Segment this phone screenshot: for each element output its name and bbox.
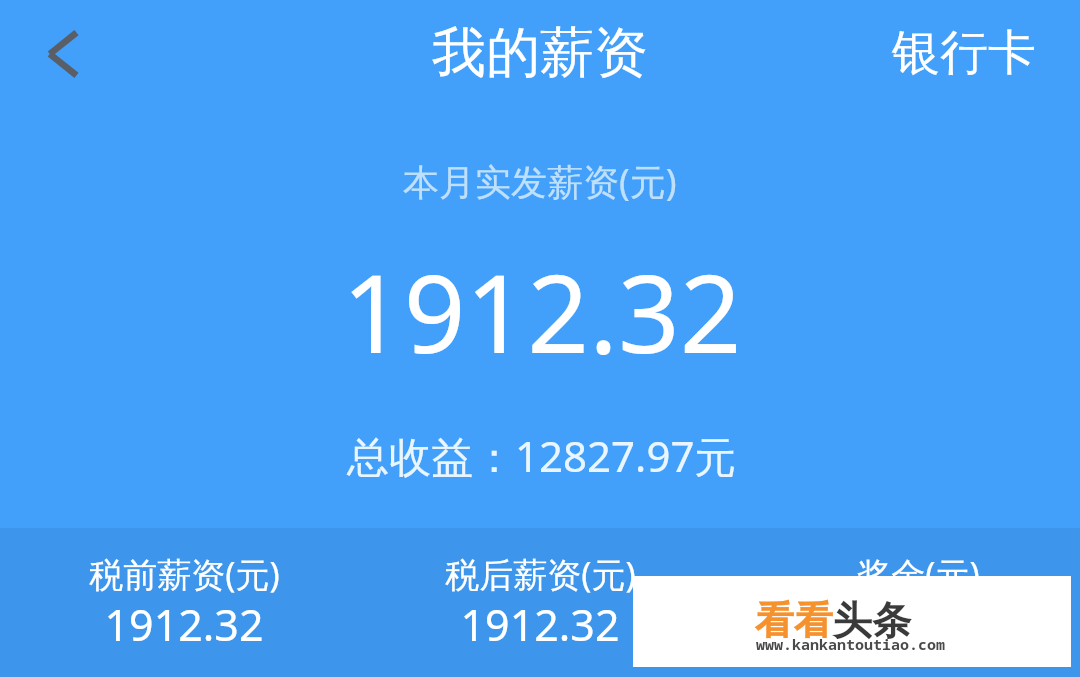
- staticText: 1912.32: [104, 595, 264, 654]
- staticText: 税前薪资(元): [89, 551, 280, 597]
- staticText: 奖金(元): [857, 551, 980, 597]
- button[interactable]: 税后薪资(元): [378, 528, 702, 677]
- staticText: 1912.32: [460, 595, 620, 654]
- button[interactable]: Back: [8, 0, 118, 108]
- button[interactable]: 银行卡: [852, 4, 1080, 104]
- staticText: 1912.32: [342, 238, 742, 385]
- button[interactable]: 奖金(元): [756, 528, 1080, 677]
- staticText: 银行卡: [892, 23, 1036, 83]
- staticText: 总收益：12827.97元: [347, 427, 737, 484]
- staticText: 0.00: [875, 595, 961, 654]
- staticText: 税后薪资(元): [445, 551, 636, 597]
- staticText: www.kankantoutiao.com: [756, 634, 946, 654]
- button[interactable]: 税前薪资(元): [22, 528, 346, 677]
- staticText: 本月实发薪资(元): [403, 157, 677, 206]
- staticText: 头条: [833, 596, 911, 645]
- staticText: 我的薪资: [432, 19, 648, 87]
- staticText: 看看: [755, 596, 833, 645]
